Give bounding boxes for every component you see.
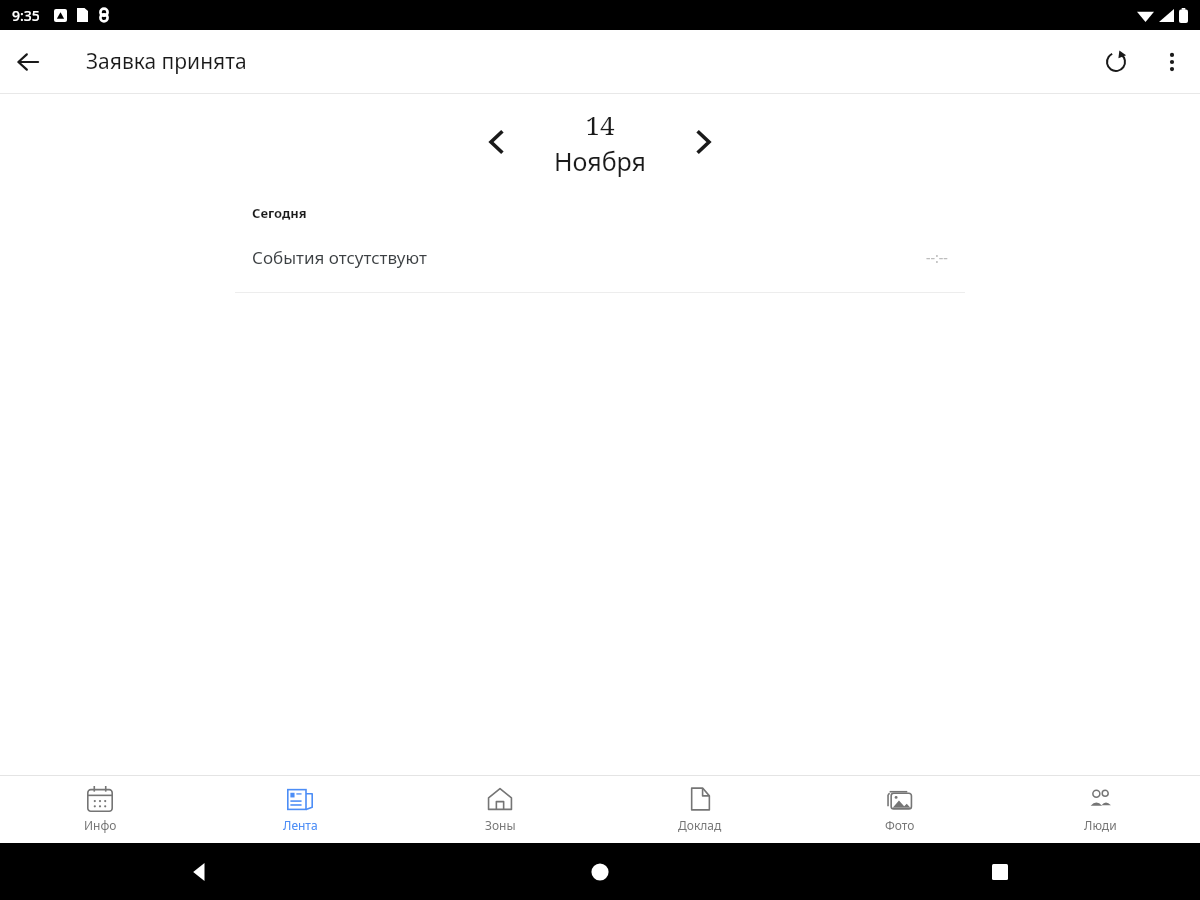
button[interactable]: Previous day xyxy=(469,114,525,170)
button[interactable]: Доклад xyxy=(600,776,800,843)
button[interactable]: Next day xyxy=(675,114,731,170)
staticText: Доклад xyxy=(678,817,722,833)
button[interactable]: Инфо xyxy=(0,776,200,843)
button[interactable]: Recent apps xyxy=(800,843,1200,900)
staticText: Инфо xyxy=(84,817,117,833)
button[interactable]: Зоны xyxy=(400,776,600,843)
staticText: 9:35 xyxy=(12,6,40,25)
staticText: События отсутствуют xyxy=(252,246,926,269)
staticText: Люди xyxy=(1084,817,1117,833)
button[interactable]: Фото xyxy=(800,776,1000,843)
staticText: Заявка принята xyxy=(86,47,1088,76)
button[interactable]: More options xyxy=(1144,34,1200,90)
button[interactable]: События отсутствуют xyxy=(235,222,965,292)
staticText: 14 xyxy=(585,107,615,142)
staticText: Лента xyxy=(283,817,318,833)
staticText: Зоны xyxy=(485,817,516,833)
button[interactable]: Home xyxy=(400,843,800,900)
button[interactable]: Лента xyxy=(200,776,400,843)
staticText: Ноября xyxy=(554,144,646,178)
button[interactable]: Back xyxy=(0,34,56,90)
button[interactable]: Refresh xyxy=(1088,34,1144,90)
staticText: Фото xyxy=(885,817,915,833)
button[interactable]: Back xyxy=(0,843,400,900)
staticText: --:-- xyxy=(926,248,948,267)
button[interactable]: Люди xyxy=(1000,776,1200,843)
staticText: Сегодня xyxy=(252,204,307,222)
